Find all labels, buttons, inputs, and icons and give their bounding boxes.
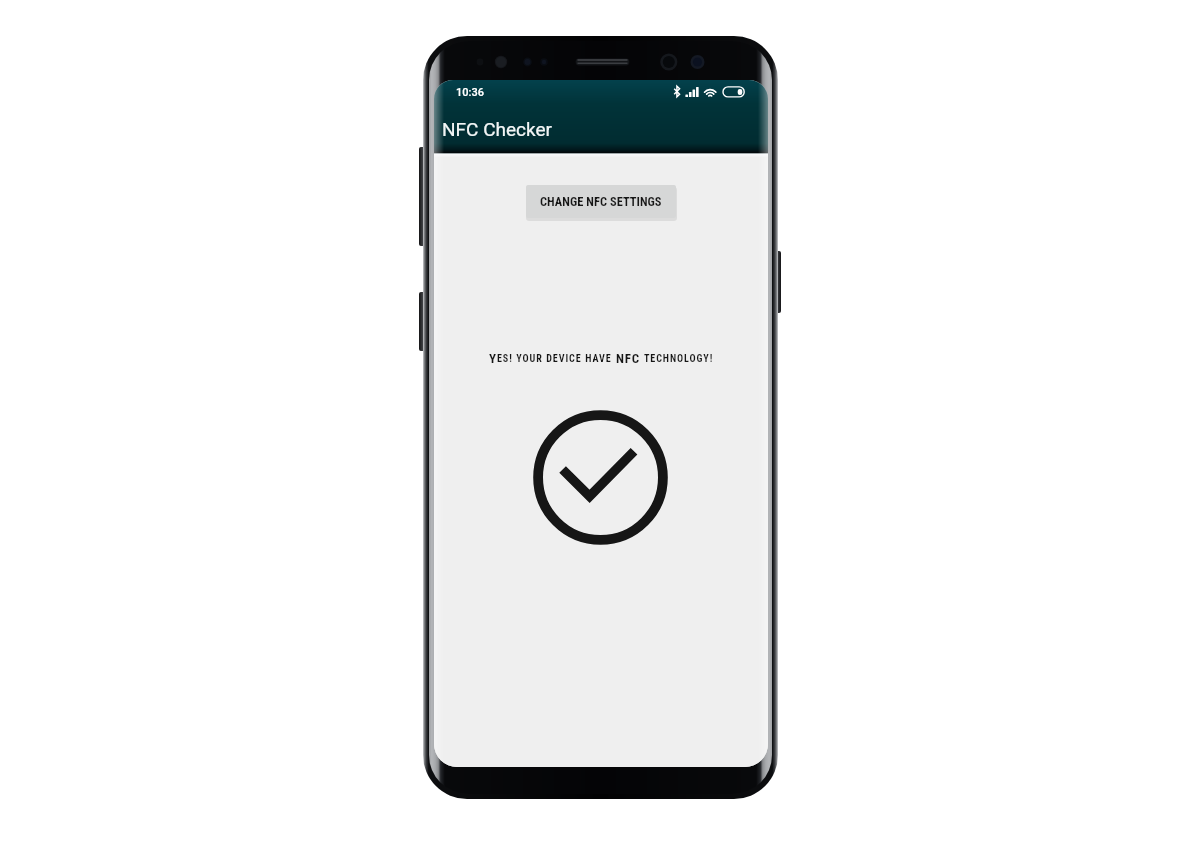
other: NFC supported — [531, 408, 670, 547]
staticText: HAVE — [582, 353, 612, 365]
staticText: ES! — [497, 353, 513, 365]
staticText: CHANGE NFC SETTINGS — [540, 194, 662, 209]
staticText: YOUR — [513, 353, 543, 365]
staticText: Y — [489, 351, 497, 366]
button[interactable]: CHANGE NFC SETTINGS — [526, 185, 676, 218]
staticText: NFC Checker — [442, 118, 552, 140]
staticText: TECHNOLOGY! — [641, 353, 714, 365]
staticText: NFC — [612, 351, 641, 366]
staticText: DEVICE — [543, 353, 582, 365]
staticText: 10:36 — [456, 86, 484, 99]
